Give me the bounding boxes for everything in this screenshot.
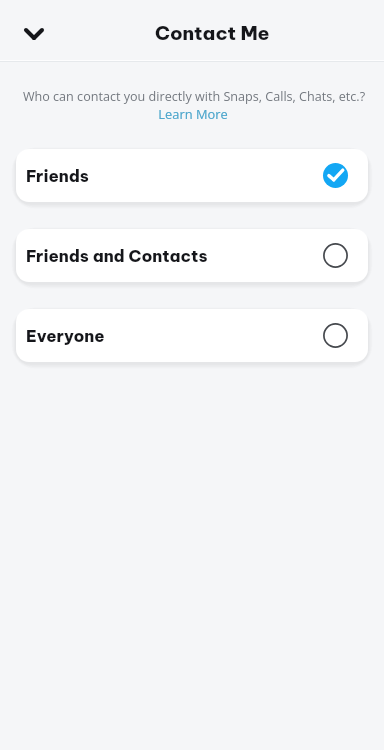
staticText: Friends and Contacts — [26, 245, 323, 266]
button[interactable]: Everyone — [16, 309, 368, 362]
staticText: Contact Me — [155, 21, 270, 45]
button[interactable]: Close — [14, 14, 54, 54]
button[interactable]: Friends and Contacts — [16, 229, 368, 282]
staticText: Everyone — [26, 325, 323, 346]
staticText: Who can contact you directly with Snaps,… — [18, 88, 370, 105]
staticText: Friends — [26, 165, 323, 186]
button[interactable]: Learn More — [158, 105, 228, 123]
button[interactable]: Friends — [16, 149, 368, 202]
